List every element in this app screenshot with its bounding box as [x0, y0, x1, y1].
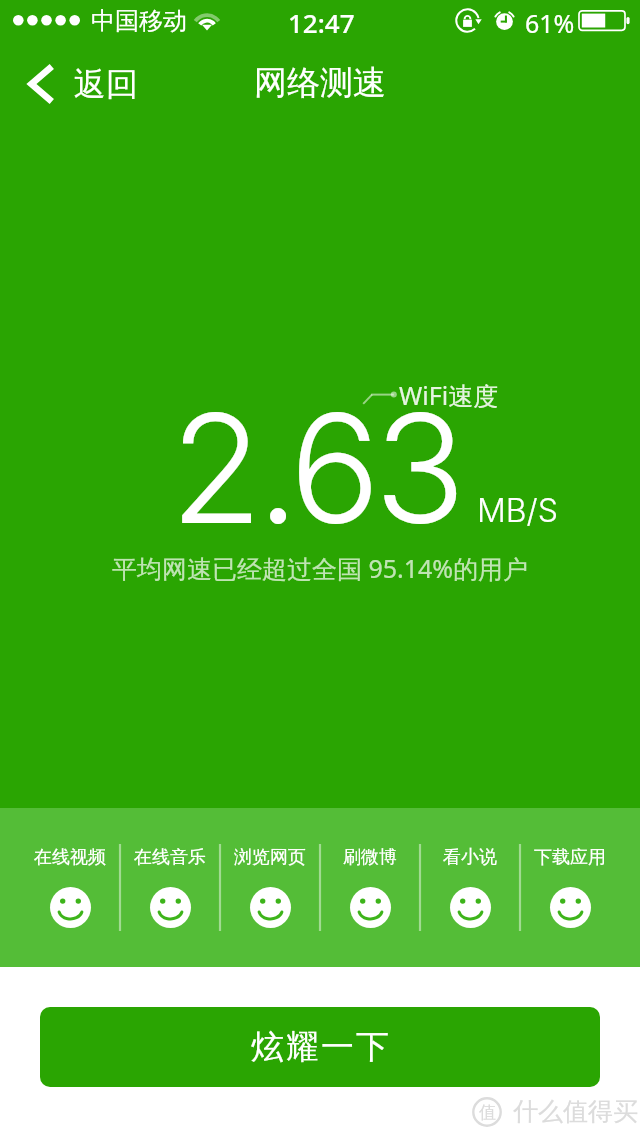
staticText: 浏览网页: [234, 846, 306, 869]
other: Alarm: [494, 9, 515, 30]
button[interactable]: 下载应用: [520, 808, 620, 967]
button[interactable]: 刷微博: [320, 808, 420, 967]
other: Rotation lock: [456, 8, 481, 33]
staticText: 2.63: [170, 377, 460, 560]
staticText: 什么值得买: [513, 1096, 638, 1127]
staticText: WiFi速度: [399, 378, 499, 412]
button[interactable]: Back: [29, 64, 138, 104]
staticText: MB/S: [477, 491, 558, 530]
staticText: 下载应用: [534, 846, 606, 869]
staticText: 中国移动: [91, 6, 187, 36]
staticText: 值: [479, 1102, 496, 1123]
button[interactable]: 看小说: [420, 808, 520, 967]
staticText: 返回: [74, 64, 138, 104]
button[interactable]: 在线视频: [20, 808, 120, 967]
button[interactable]: 浏览网页: [220, 808, 320, 967]
staticText: 看小说: [443, 846, 497, 869]
staticText: 在线音乐: [134, 846, 206, 869]
staticText: 61%: [525, 6, 575, 40]
other: Back: [29, 64, 53, 104]
other: Battery 61 percent: [579, 10, 633, 32]
button[interactable]: 炫耀一下: [40, 1007, 600, 1087]
staticText: 平均网速已经超过全国 95.14%的用户: [0, 551, 640, 585]
staticText: 炫耀一下: [250, 1026, 390, 1068]
button[interactable]: 在线音乐: [120, 808, 220, 967]
staticText: 12:47: [288, 5, 355, 40]
staticText: 刷微博: [343, 846, 397, 869]
staticText: 在线视频: [34, 846, 106, 869]
staticText: 网络测速: [254, 62, 386, 104]
other: Wi-Fi: [192, 10, 222, 34]
